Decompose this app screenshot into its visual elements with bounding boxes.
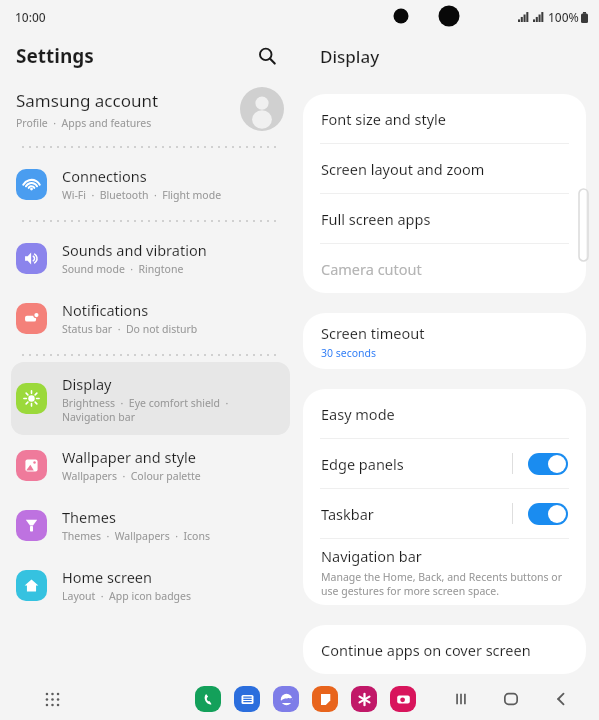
staticText: Settings [16,43,94,69]
button[interactable]: Easy mode [303,389,586,438]
staticText: Connections [62,166,147,186]
button[interactable]: Camera cutout [303,244,586,293]
button[interactable]: Screen timeout [303,313,586,369]
button[interactable]: Edge panels toggle [528,453,568,475]
staticText: Edge panels [321,454,404,474]
staticText: Themes · Wallpapers · Icons [62,529,210,543]
button[interactable]: Continue apps on cover screen [303,625,586,674]
button[interactable]: Camera [390,686,416,712]
staticText: Themes [62,507,116,527]
button[interactable]: Internet [273,686,299,712]
staticText: 30 seconds [321,346,377,360]
button[interactable]: Home [497,685,525,713]
staticText: Home screen [62,567,152,587]
staticText: Samsung account [16,89,159,112]
button[interactable]: Taskbar toggle [528,503,568,525]
staticText: Display [62,374,112,394]
button[interactable]: Home screen [11,555,290,615]
staticText: Full screen apps [321,209,431,229]
staticText: Navigation bar [321,546,422,566]
button[interactable]: Gallery [351,686,377,712]
button[interactable]: Font size and style [303,94,586,143]
staticText: 100% [548,9,579,25]
staticText: Wallpapers · Colour palette [62,469,201,483]
button[interactable]: Navigation bar [303,539,586,605]
button[interactable]: Notifications [11,288,290,348]
staticText: Continue apps on cover screen [321,640,531,660]
staticText: Profile · Apps and features [16,116,152,130]
button[interactable]: Themes [11,495,290,555]
button[interactable]: Back [547,685,575,713]
button[interactable]: Notes [312,686,338,712]
button[interactable]: Messages [234,686,260,712]
button[interactable]: Search [250,39,284,73]
button[interactable]: Edge panels [303,439,586,488]
button[interactable]: Phone [195,686,221,712]
staticText: Easy mode [321,404,395,424]
staticText: Brightness · Eye comfort shield · [62,396,229,410]
staticText: Screen layout and zoom [321,159,485,179]
staticText: Display [320,45,380,68]
staticText: 10:00 [15,9,46,25]
staticText: Sound mode · Ringtone [62,262,184,276]
staticText: Notifications [62,300,149,320]
staticText: Manage the Home, Back, and Recents butto… [321,570,562,598]
button[interactable]: Samsung account [0,78,301,140]
staticText: Font size and style [321,109,446,129]
button[interactable]: Taskbar [303,489,586,538]
staticText: Camera cutout [321,259,422,279]
staticText: Taskbar [321,504,374,524]
button[interactable]: Sounds and vibration [11,228,290,288]
staticText: Status bar · Do not disturb [62,322,198,336]
button[interactable]: Wallpaper and style [11,435,290,495]
button[interactable]: Recents [447,685,475,713]
staticText: Sounds and vibration [62,240,207,260]
button[interactable]: Display [11,362,290,435]
staticText: Layout · App icon badges [62,589,192,603]
button[interactable]: Screen layout and zoom [303,144,586,193]
staticText: Navigation bar [62,410,136,424]
staticText: Screen timeout [321,323,425,343]
staticText: Wi-Fi · Bluetooth · Flight mode [62,188,222,202]
button[interactable]: Apps [38,685,66,713]
button[interactable]: Full screen apps [303,194,586,243]
staticText: Wallpaper and style [62,447,196,467]
button[interactable]: Connections [11,154,290,214]
